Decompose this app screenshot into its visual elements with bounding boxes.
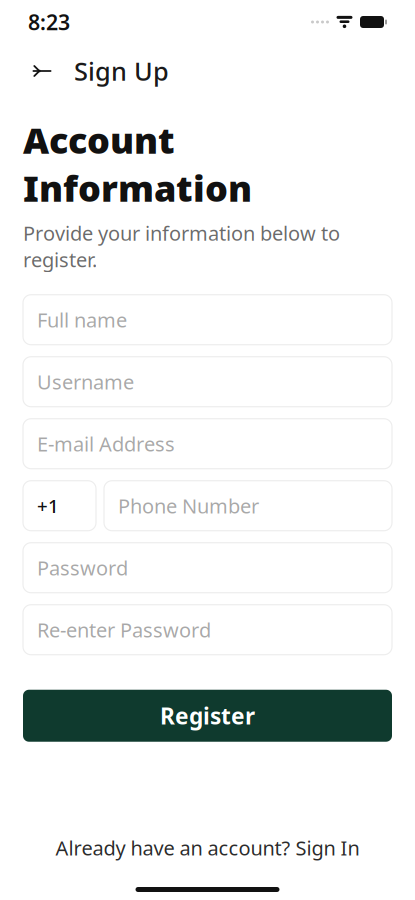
staticText: Re-enter Password: [37, 616, 211, 643]
staticText: Password: [37, 554, 128, 581]
button[interactable]: Register: [23, 690, 392, 742]
button[interactable]: E-mail Address: [23, 419, 392, 469]
button[interactable]: Username: [23, 357, 392, 407]
staticText: Full name: [37, 306, 127, 333]
staticText: Register: [160, 701, 255, 731]
button[interactable]: Full name: [23, 295, 392, 345]
staticText: Sign Up: [74, 54, 169, 88]
button[interactable]: Phone Number: [104, 481, 392, 531]
button[interactable]: Back: [22, 51, 62, 91]
button[interactable]: Re-enter Password: [23, 605, 392, 655]
button[interactable]: +1: [23, 481, 96, 531]
staticText: Provide your information below to regist…: [23, 220, 340, 273]
button[interactable]: Already have an account? Sign In: [23, 826, 392, 869]
staticText: Already have an account? Sign In: [55, 834, 359, 861]
staticText: Username: [37, 368, 134, 395]
staticText: Account Information: [23, 116, 252, 212]
staticText: 8:23: [28, 8, 70, 36]
staticText: +1: [37, 493, 59, 518]
staticText: E-mail Address: [37, 430, 175, 457]
button[interactable]: Password: [23, 543, 392, 593]
staticText: Phone Number: [118, 492, 259, 519]
